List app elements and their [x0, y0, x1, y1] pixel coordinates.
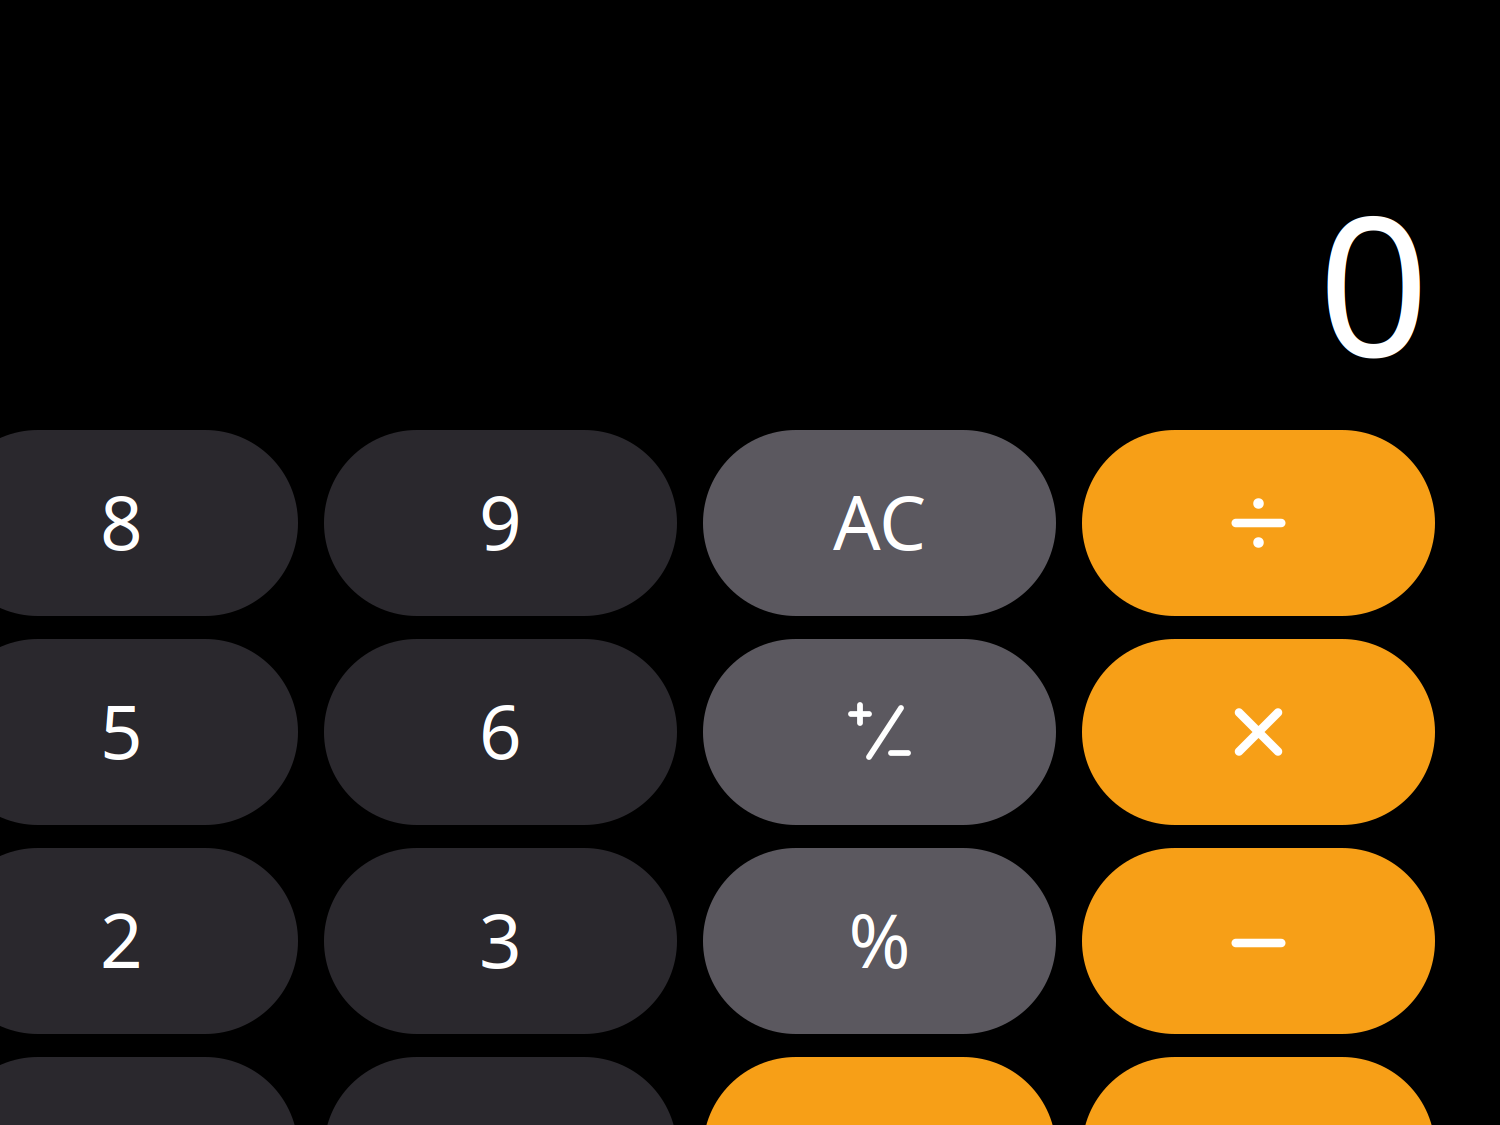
button[interactable]: Divide: [1082, 430, 1435, 616]
button[interactable]: 1: [0, 1057, 298, 1125]
button[interactable]: %: [703, 848, 1056, 1034]
button[interactable]: Plus: [1082, 1057, 1435, 1125]
button[interactable]: Equals: [703, 1057, 1056, 1125]
staticText: 3: [479, 889, 522, 989]
staticText: 5: [100, 680, 143, 780]
staticText: 2: [100, 889, 143, 989]
button[interactable]: 3: [324, 848, 677, 1034]
button[interactable]: 0: [324, 1057, 677, 1125]
button[interactable]: AC: [703, 430, 1056, 616]
staticText: 6: [479, 680, 522, 780]
staticText: %: [848, 889, 910, 989]
button[interactable]: Multiply: [1082, 639, 1435, 825]
staticText: 8: [100, 471, 143, 571]
button[interactable]: 6: [324, 639, 677, 825]
button[interactable]: 2: [0, 848, 298, 1034]
button[interactable]: 5: [0, 639, 298, 825]
button[interactable]: Plus Minus: [703, 639, 1056, 825]
button[interactable]: 9: [324, 430, 677, 616]
button[interactable]: Minus: [1082, 848, 1435, 1034]
staticText: AC: [833, 471, 926, 571]
staticText: 9: [479, 471, 522, 571]
button[interactable]: 8: [0, 430, 298, 616]
staticText: 0: [1318, 152, 1429, 410]
